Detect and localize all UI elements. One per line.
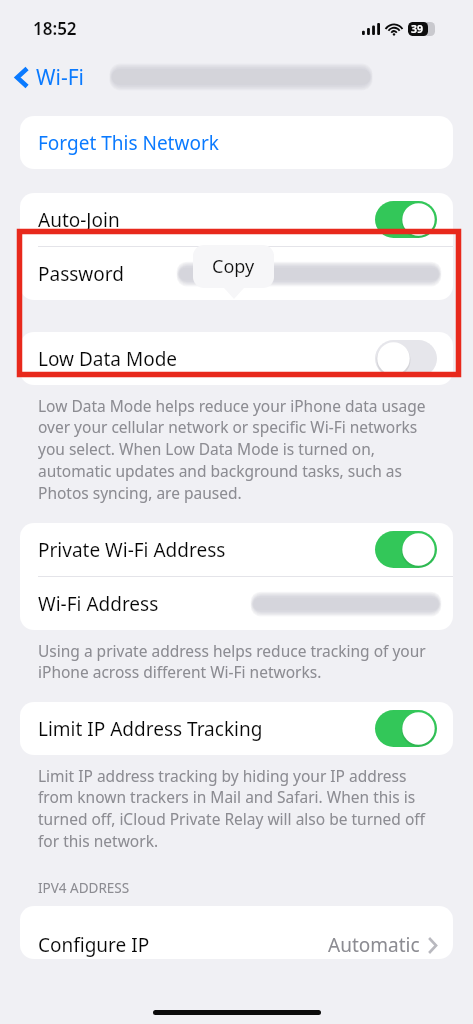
button[interactable]: Switch on [375,201,437,238]
button[interactable]: Wi-Fi Address [20,577,453,630]
button[interactable]: Configure IP [20,906,453,959]
staticText: Copy [212,254,255,279]
staticText: 39 [411,22,424,36]
button[interactable]: Copy [193,245,274,288]
button[interactable]: Private Wi-Fi Address [20,523,453,576]
staticText: Configure IP [38,932,150,958]
staticText: Limit IP address tracking by hiding your… [38,765,439,851]
staticText: Low Data Mode [38,346,178,372]
staticText: Wi-Fi Address [38,591,159,617]
button[interactable]: Password [20,247,453,300]
button[interactable]: Auto-Join [20,193,453,246]
staticText: 18:52 [33,17,77,40]
staticText: Auto-Join [38,207,120,233]
button[interactable]: Switch off [375,340,437,377]
button[interactable]: Switch on [375,710,437,747]
button[interactable]: Forget This Network [20,116,453,169]
button[interactable]: Low Data Mode [20,332,453,385]
staticText: Forget This Network [38,130,219,156]
staticText: Limit IP Address Tracking [38,716,263,742]
staticText: Low Data Mode helps reduce your iPhone d… [38,395,439,503]
staticText: Automatic [328,932,420,958]
staticText: Password [38,261,124,287]
staticText: IPV4 ADDRESS [38,879,130,897]
button[interactable]: Limit IP Address Tracking [20,702,453,755]
staticText: Private Wi-Fi Address [38,537,226,563]
button[interactable]: Back to Wi-Fi [12,57,89,98]
staticText: Wi-Fi [36,63,85,92]
button[interactable]: Switch on [375,531,437,568]
staticText: Using a private address helps reduce tra… [38,640,439,682]
